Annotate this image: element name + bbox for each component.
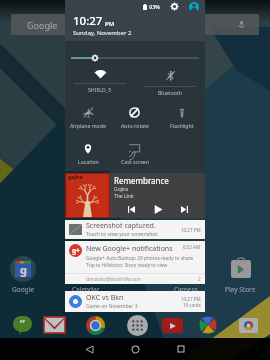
staticText: Location (78, 158, 99, 165)
staticText: g+ (72, 246, 80, 255)
staticText: PM (105, 20, 115, 28)
button[interactable]: Next (176, 201, 192, 217)
staticText: Play Store (225, 285, 256, 294)
button[interactable]: g+ (65, 241, 205, 284)
staticText: Auto-rotate (121, 122, 149, 129)
button[interactable]: YouTube (159, 312, 185, 338)
staticText: SHIELD_5 (88, 86, 112, 93)
staticText: 93% (149, 3, 160, 10)
button[interactable]: Location (65, 138, 111, 165)
button[interactable]: SHIELD_5 (65, 66, 135, 93)
staticText: 6:52 AM (183, 244, 201, 250)
staticText: Trip to Hillsboro: Story ready to view (86, 262, 168, 269)
staticText: Bluetooth (158, 89, 183, 96)
button[interactable]: User account (188, 1, 199, 12)
button[interactable]: Play Store (218, 256, 263, 294)
button[interactable]: g (0, 256, 45, 294)
button[interactable]: Auto-rotate (111, 102, 158, 129)
staticText: Airplane mode (70, 122, 106, 129)
button[interactable]: Settings (169, 1, 180, 12)
staticText: Game on November 3 (86, 303, 138, 310)
button[interactable]: Photos (195, 312, 221, 338)
button[interactable]: Play (149, 200, 167, 218)
button[interactable]: Bluetooth (135, 66, 205, 96)
button[interactable]: Apps (124, 312, 150, 338)
staticText: Touch to view your screenshot. (86, 231, 159, 238)
button[interactable]: Previous (123, 201, 139, 217)
button[interactable]: Recents (158, 338, 204, 360)
staticText: Remembrance (114, 175, 169, 186)
staticText: 10:27 PM (181, 296, 201, 302)
staticText: 10:27 (73, 13, 103, 29)
staticText: Gojira (114, 186, 129, 193)
staticText: Screenshot captured. (86, 221, 156, 231)
staticText: 10 cards (183, 302, 201, 308)
button[interactable]: OKC vs Bkn (65, 291, 205, 312)
staticText: Cast screen (121, 158, 149, 165)
staticText: 10:27 PM (181, 227, 201, 233)
button[interactable]: Calendar (63, 256, 108, 294)
staticText: OKC vs Bkn (86, 293, 124, 303)
staticText: ” (20, 316, 25, 331)
staticText: Camera (174, 285, 198, 294)
staticText: Google (12, 285, 34, 294)
button[interactable]: Home (112, 338, 158, 360)
staticText: gojira (68, 174, 83, 181)
staticText: The Link (114, 193, 134, 200)
button[interactable]: Gmail (41, 312, 67, 338)
button[interactable]: Cast screen (111, 138, 158, 165)
staticText: Flashlight (170, 122, 194, 129)
button[interactable]: Camera (163, 256, 208, 294)
staticText: Calendar (72, 285, 100, 294)
staticText: 2 (198, 276, 201, 283)
button[interactable]: Screenshot captured. (65, 220, 205, 239)
staticText: New Google+ notifications (86, 244, 183, 254)
staticText: Sunday, November 2 (73, 29, 132, 37)
button[interactable]: Google (11, 14, 259, 35)
button[interactable]: Camera (235, 312, 261, 338)
button[interactable]: Hangouts (9, 312, 35, 338)
button[interactable]: Airplane mode (65, 102, 111, 129)
staticText: Google (27, 19, 58, 31)
button[interactable]: Back (66, 338, 112, 360)
button[interactable]: Chrome (82, 312, 108, 338)
button[interactable]: gojira (65, 173, 205, 218)
staticText: timotato@droid-life.com (86, 276, 198, 283)
staticText: Google+ Auto Backup: 29 photos ready to … (86, 255, 194, 262)
button[interactable]: Flashlight (158, 102, 205, 129)
staticText: g (20, 262, 27, 277)
